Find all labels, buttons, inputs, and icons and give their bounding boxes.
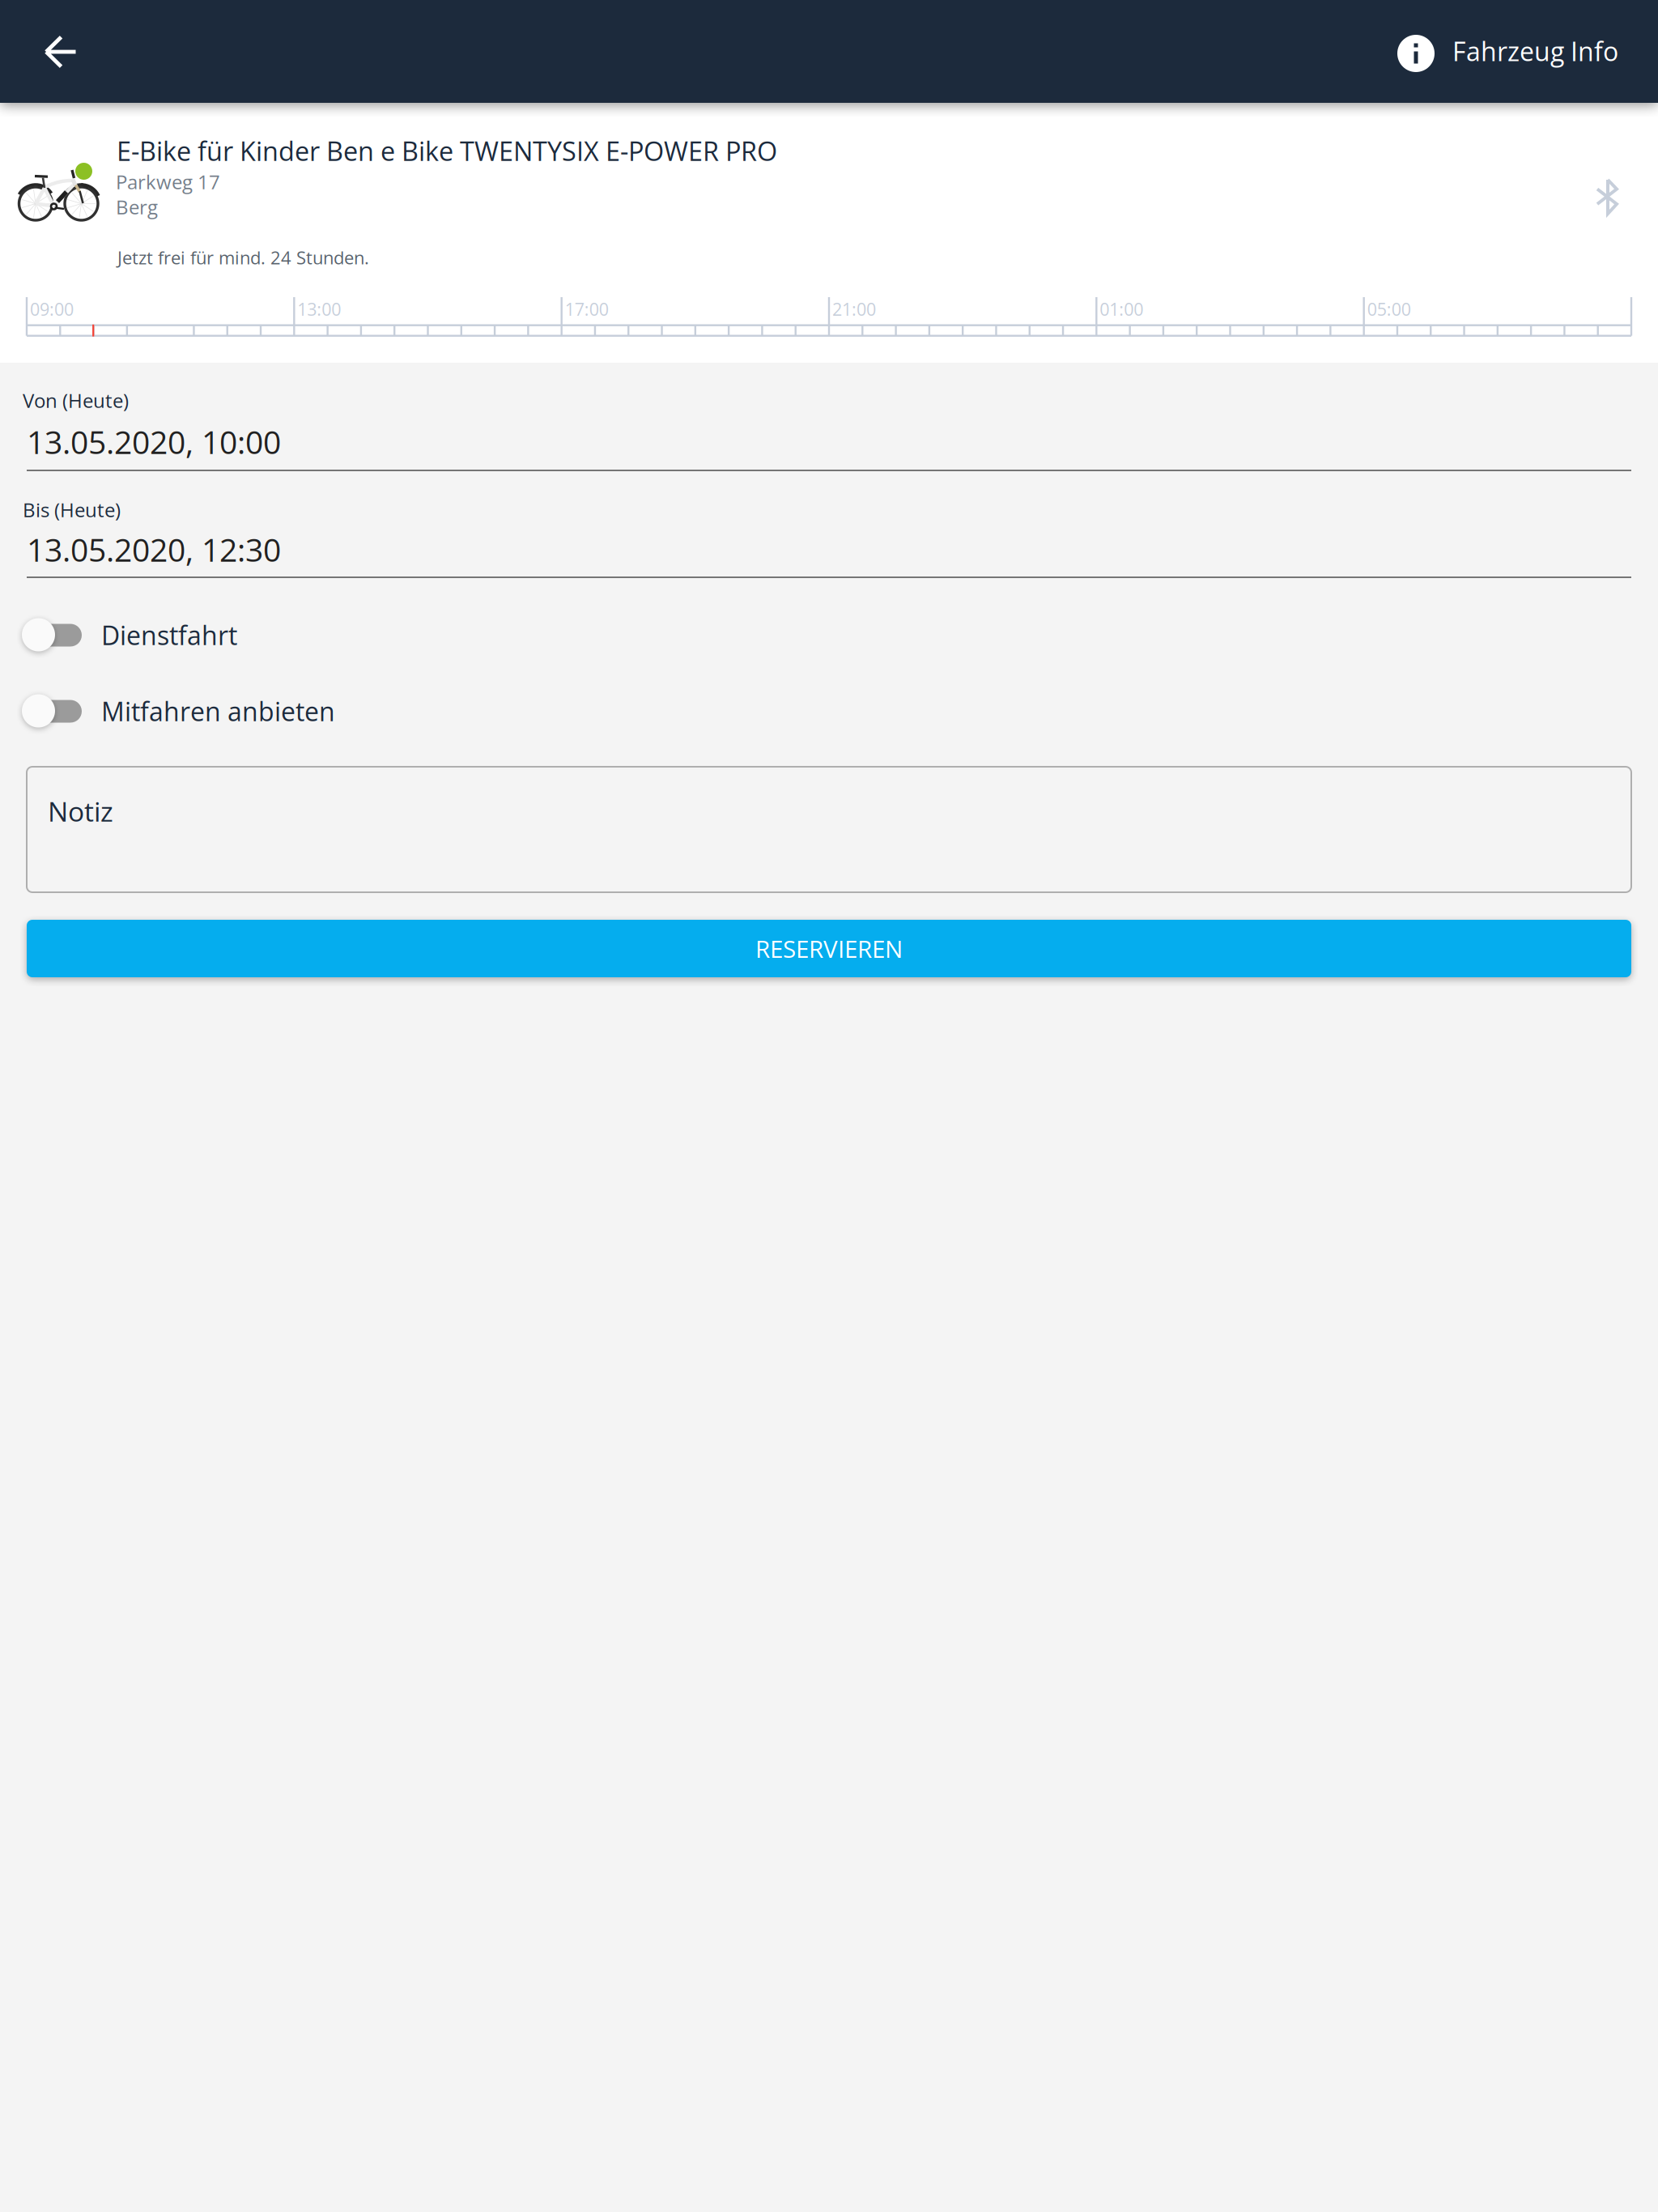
staticText: Von (Heute) xyxy=(23,387,129,413)
staticText: Bis (Heute) xyxy=(23,496,121,523)
staticText: Jetzt frei für mind. 24 Stunden. xyxy=(117,245,369,270)
button[interactable]: Dienstfahrt xyxy=(0,618,567,662)
staticText: Mitfahren anbieten xyxy=(101,693,335,729)
staticText: Fahrzeug Info xyxy=(1452,33,1618,69)
button[interactable]: RESERVIEREN xyxy=(27,920,1631,977)
staticText: 21:00 xyxy=(832,297,876,321)
staticText: 17:00 xyxy=(565,297,609,321)
staticText: 13:00 xyxy=(297,297,341,321)
staticText: RESERVIEREN xyxy=(755,932,903,965)
staticText: 05:00 xyxy=(1367,297,1411,321)
button[interactable]: Mitfahren anbieten xyxy=(0,694,567,738)
button[interactable]: Bluetooth xyxy=(1576,159,1638,235)
button[interactable]: Fahrzeug Info xyxy=(1383,17,1633,90)
staticText: 13.05.2020, 10:00 xyxy=(27,420,281,463)
staticText: 13.05.2020, 12:30 xyxy=(27,528,281,571)
staticText: 01:00 xyxy=(1100,297,1143,321)
staticText: Dienstfahrt xyxy=(101,617,237,653)
staticText: E-Bike für Kinder Ben e Bike TWENTYSIX E… xyxy=(117,133,777,168)
staticText: 09:00 xyxy=(30,297,74,321)
staticText: Notiz xyxy=(48,793,113,830)
button[interactable]: Zurück xyxy=(23,13,101,91)
staticText: Berg xyxy=(116,194,158,220)
staticText: Parkweg 17 xyxy=(116,168,220,195)
